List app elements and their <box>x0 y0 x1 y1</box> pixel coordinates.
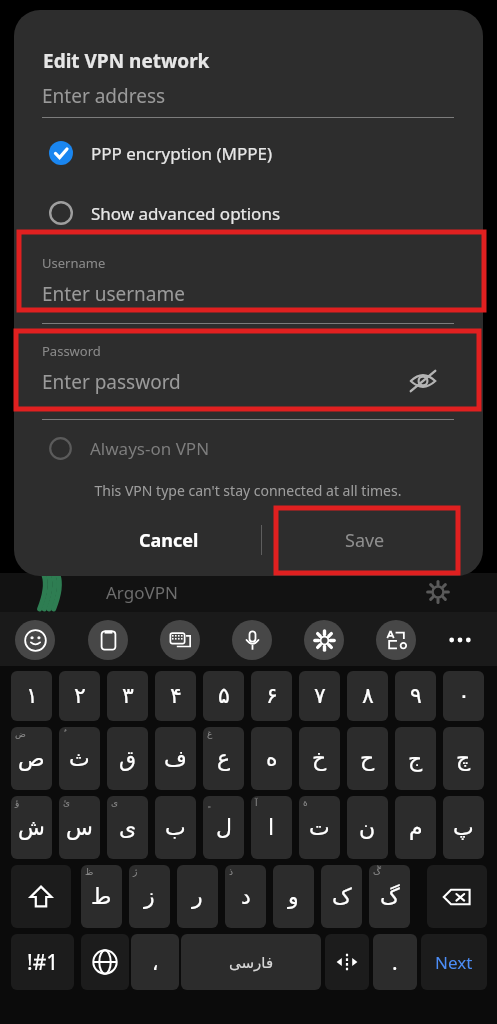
staticText: Always-on VPN <box>90 437 210 460</box>
staticText: ۸ <box>362 683 374 709</box>
staticText: و <box>288 884 299 910</box>
button[interactable]: ۲ <box>59 671 100 721</box>
staticText: ۵ <box>218 683 230 709</box>
button[interactable]: ۰ <box>443 671 484 721</box>
button[interactable]: Always-on VPN <box>49 428 349 468</box>
button[interactable]: ب <box>155 796 196 859</box>
staticText: Save <box>345 528 385 553</box>
staticText: ش <box>18 815 45 841</box>
button[interactable]: چ <box>443 727 484 790</box>
button[interactable]: ق <box>107 727 148 790</box>
button[interactable]: پ <box>443 796 484 859</box>
button[interactable]: ف <box>155 727 196 790</box>
staticText: ث <box>69 746 90 772</box>
button[interactable]: ۱ <box>11 671 52 721</box>
button[interactable]: Change language <box>81 934 129 990</box>
staticText: آ <box>255 798 258 808</box>
staticText: !#1 <box>27 948 59 977</box>
staticText: ۱ <box>26 683 38 709</box>
button[interactable]: ۴ <box>155 671 196 721</box>
button[interactable]: ۷ <box>299 671 340 721</box>
button[interactable]: . <box>373 934 417 990</box>
staticText: Show advanced options <box>91 202 281 225</box>
staticText: پ <box>453 815 474 841</box>
button[interactable]: Next <box>421 934 487 990</box>
button[interactable]: ح <box>347 727 388 790</box>
button[interactable]: ک <box>321 865 362 928</box>
button[interactable]: ۶ <box>251 671 292 721</box>
button[interactable]: گ <box>369 865 410 928</box>
button[interactable]: Show advanced options <box>49 192 379 234</box>
button[interactable]: Keyboard layouts <box>160 620 200 660</box>
staticText: د <box>241 884 251 910</box>
staticText: Enter password <box>42 369 181 395</box>
button[interactable]: د <box>225 865 266 928</box>
staticText: This VPN type can't stay connected at al… <box>42 481 454 500</box>
button[interactable]: م <box>395 796 436 859</box>
button[interactable]: Move cursor <box>325 934 369 990</box>
button[interactable]: ۹ <box>395 671 436 721</box>
button[interactable]: ت <box>299 796 340 859</box>
button[interactable]: !#1 <box>11 934 74 990</box>
button[interactable]: ۳ <box>107 671 148 721</box>
button[interactable]: ، <box>131 934 179 990</box>
staticText: Enter username <box>42 281 185 307</box>
button[interactable]: ص <box>11 727 52 790</box>
button[interactable]: PPP encryption (MPPE) <box>49 132 379 174</box>
staticText: فارسی <box>229 954 274 971</box>
staticText: خ <box>312 746 327 772</box>
staticText: ArgoVPN <box>106 581 178 604</box>
button[interactable]: ش <box>11 796 52 859</box>
button[interactable]: خ <box>299 727 340 790</box>
button[interactable]: Username <box>14 232 483 314</box>
button[interactable]: ز <box>129 865 170 928</box>
button[interactable]: ن <box>347 796 388 859</box>
staticText: Edit VPN network <box>43 48 210 74</box>
button[interactable]: Backspace <box>427 865 487 928</box>
button[interactable]: Password <box>14 330 483 412</box>
button[interactable]: Translate <box>376 620 416 660</box>
button[interactable]: ۸ <box>347 671 388 721</box>
staticText: چ <box>456 746 471 772</box>
button[interactable]: ۵ <box>203 671 244 721</box>
staticText: ة <box>303 798 308 808</box>
staticText: ی <box>119 815 137 841</box>
button[interactable]: ی <box>107 796 148 859</box>
button[interactable]: ع <box>203 727 244 790</box>
staticText: ۴ <box>170 683 182 709</box>
staticText: ڴ <box>373 867 382 877</box>
staticText: ۶ <box>266 683 278 709</box>
button[interactable]: More options <box>440 620 480 660</box>
staticText: ۳ <box>122 683 134 709</box>
staticText: ۷ <box>314 683 326 709</box>
staticText: ذ <box>229 867 234 877</box>
button[interactable]: س <box>59 796 100 859</box>
staticText: ۹ <box>410 683 422 709</box>
button[interactable]: ل <box>203 796 244 859</box>
button[interactable]: فارسی <box>181 934 321 990</box>
staticText: ع <box>217 746 231 772</box>
button[interactable]: ا <box>251 796 292 859</box>
staticText: ل <box>216 815 232 841</box>
button[interactable]: Emoji <box>15 620 55 660</box>
staticText: ظ <box>85 867 94 877</box>
button[interactable]: Cancel <box>94 515 244 565</box>
button[interactable]: Show password <box>406 364 440 398</box>
staticText: ن <box>359 815 376 841</box>
button[interactable]: ج <box>395 727 436 790</box>
staticText: ؤ <box>15 798 20 808</box>
staticText: ه <box>266 746 278 772</box>
button[interactable]: Clipboard <box>88 620 128 660</box>
button[interactable]: Settings <box>304 620 344 660</box>
button[interactable]: Voice input <box>232 620 272 660</box>
staticText: ژ <box>133 867 138 877</box>
button[interactable]: و <box>273 865 314 928</box>
staticText: ح <box>360 746 375 772</box>
button[interactable]: ث <box>59 727 100 790</box>
button[interactable]: Shift <box>11 865 71 928</box>
button[interactable]: ر <box>177 865 218 928</box>
button[interactable]: ه <box>251 727 292 790</box>
button[interactable]: ط <box>81 865 122 928</box>
button[interactable]: Save <box>282 515 447 565</box>
staticText: . <box>392 948 398 977</box>
